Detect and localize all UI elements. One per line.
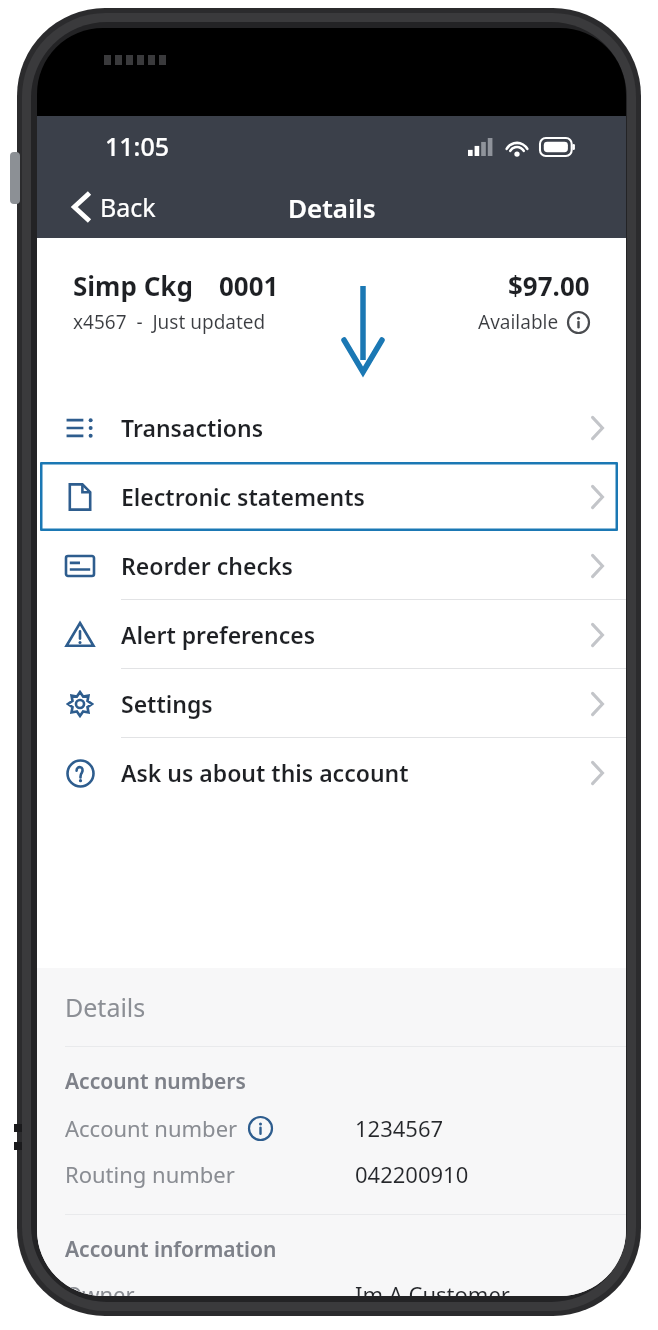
staticText: 11:05 — [105, 129, 170, 163]
staticText: Transactions — [121, 412, 263, 443]
staticText: Routing number — [65, 1159, 355, 1189]
button[interactable]: Transactions — [37, 393, 626, 462]
staticText: Owner — [65, 1279, 355, 1296]
button[interactable]: Account number information — [248, 1116, 273, 1141]
staticText: Settings — [121, 688, 213, 719]
button[interactable]: Electronic statements — [37, 462, 626, 531]
staticText: 1234567 — [355, 1113, 444, 1143]
staticText: Reorder checks — [121, 550, 293, 581]
staticText: x4567 - Just updated — [73, 309, 266, 335]
staticText: Details — [288, 190, 376, 225]
staticText: Alert preferences — [121, 619, 316, 650]
button[interactable]: Alert preferences — [37, 600, 626, 669]
staticText: Account number — [65, 1113, 238, 1143]
staticText: Back — [100, 190, 156, 224]
button[interactable]: Back — [63, 182, 166, 232]
staticText: Available — [478, 309, 559, 335]
staticText: Account information — [65, 1235, 277, 1264]
button[interactable]: Simp Ckg — [51, 250, 612, 375]
button[interactable]: Ask us about this account — [37, 738, 626, 807]
button[interactable]: Available balance information — [567, 311, 590, 334]
button[interactable]: Settings — [37, 669, 626, 738]
button[interactable]: Reorder checks — [37, 531, 626, 600]
staticText: 042200910 — [355, 1159, 469, 1189]
staticText: Im A Customer — [355, 1279, 510, 1296]
staticText: $97.00 — [508, 268, 590, 303]
staticText: Electronic statements — [121, 481, 365, 512]
staticText: Ask us about this account — [121, 757, 409, 788]
staticText: Simp Ckg — [73, 268, 193, 303]
staticText: Account numbers — [65, 1067, 246, 1096]
staticText: 0001 — [219, 268, 279, 303]
staticText: Details — [65, 990, 146, 1024]
